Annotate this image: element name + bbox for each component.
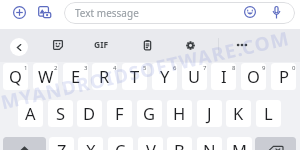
staticText: R xyxy=(99,65,110,87)
staticText: A xyxy=(25,102,36,124)
staticText: W xyxy=(38,65,54,87)
button[interactable]: P xyxy=(271,63,296,90)
button[interactable]: C xyxy=(108,137,133,150)
staticText: 1 xyxy=(24,64,28,72)
button[interactable]: W xyxy=(33,63,58,90)
staticText: T xyxy=(130,65,140,87)
button[interactable]: More options xyxy=(233,36,251,54)
staticText: 4 xyxy=(113,64,117,72)
button[interactable]: E xyxy=(63,63,88,90)
staticText: M xyxy=(232,139,247,150)
button[interactable]: D xyxy=(77,100,102,127)
staticText: Text message xyxy=(75,6,139,20)
staticText: K xyxy=(233,102,244,124)
button[interactable]: Shift xyxy=(3,137,46,150)
button[interactable]: Photos xyxy=(34,2,54,22)
staticText: P xyxy=(279,65,289,87)
staticText: Q xyxy=(9,65,22,87)
staticText: C xyxy=(115,139,126,150)
button[interactable]: S xyxy=(48,100,73,127)
staticText: 7 xyxy=(203,64,207,72)
staticText: E xyxy=(71,65,81,87)
button[interactable]: J xyxy=(197,100,222,127)
staticText: O xyxy=(247,65,260,87)
button[interactable]: Y xyxy=(152,63,177,90)
staticText: U xyxy=(188,65,201,87)
button[interactable]: M xyxy=(227,137,252,150)
staticText: Y xyxy=(160,65,170,87)
staticText: Z xyxy=(57,139,67,150)
staticText: B xyxy=(174,139,185,150)
staticText: S xyxy=(56,102,66,124)
button[interactable]: O xyxy=(241,63,266,90)
button[interactable]: R xyxy=(92,63,117,90)
button[interactable]: Q xyxy=(3,63,28,90)
button[interactable]: B xyxy=(167,137,192,150)
staticText: F xyxy=(115,102,124,124)
staticText: D xyxy=(83,102,96,124)
button[interactable]: Back xyxy=(10,38,28,56)
button[interactable]: Clipboard xyxy=(138,36,156,54)
button[interactable]: F xyxy=(107,100,132,127)
button[interactable]: X xyxy=(78,137,103,150)
staticText: 3 xyxy=(84,64,88,72)
button[interactable]: Z xyxy=(49,137,74,150)
button[interactable]: L xyxy=(256,100,281,127)
staticText: H xyxy=(173,102,186,124)
staticText: GIF xyxy=(94,39,109,51)
staticText: 9 xyxy=(262,64,266,72)
button[interactable]: Emoji xyxy=(240,2,260,22)
button[interactable]: K xyxy=(226,100,251,127)
staticText: 5 xyxy=(143,64,147,72)
button[interactable]: Backspace xyxy=(255,137,296,150)
staticText: 2 xyxy=(54,64,58,72)
staticText: V xyxy=(146,139,156,150)
button[interactable]: H xyxy=(167,100,192,127)
staticText: N xyxy=(203,139,216,150)
staticText: 0 xyxy=(292,64,296,72)
staticText: I xyxy=(221,65,227,87)
button[interactable]: V xyxy=(138,137,163,150)
staticText: G xyxy=(143,102,156,124)
button[interactable]: Add xyxy=(9,2,29,22)
button[interactable]: Settings xyxy=(181,36,199,54)
button[interactable]: A xyxy=(18,100,43,127)
staticText: J xyxy=(207,102,212,124)
button[interactable]: Text message xyxy=(64,2,295,24)
button[interactable]: N xyxy=(197,137,222,150)
button[interactable]: Stickers xyxy=(49,36,67,54)
button[interactable]: GIF xyxy=(91,37,112,53)
button[interactable]: I xyxy=(211,63,236,90)
button[interactable]: G xyxy=(137,100,162,127)
staticText: 6 xyxy=(173,64,177,72)
button[interactable]: T xyxy=(122,63,147,90)
button[interactable]: Voice input xyxy=(266,2,286,22)
staticText: 8 xyxy=(232,64,236,72)
staticText: X xyxy=(86,139,96,150)
staticText: L xyxy=(264,102,273,124)
button[interactable]: U xyxy=(182,63,207,90)
